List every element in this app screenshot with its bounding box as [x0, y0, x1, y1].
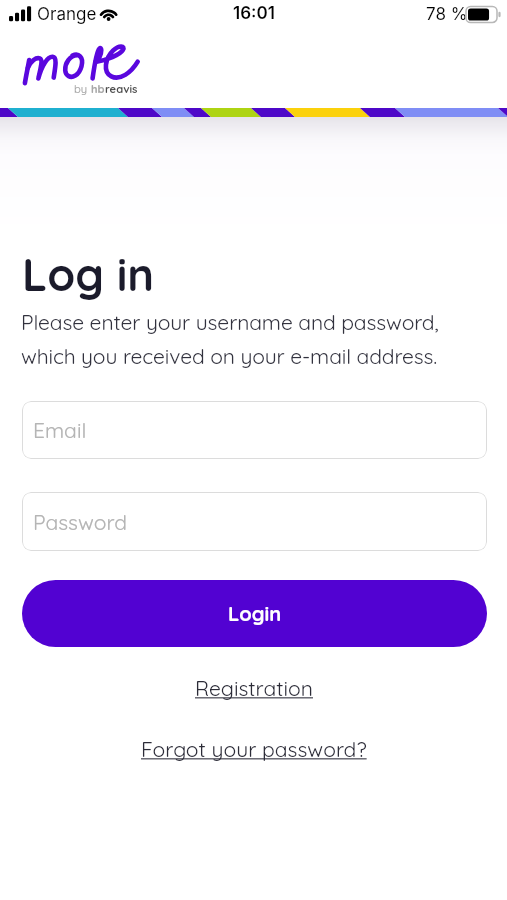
staticText: hb [91, 82, 105, 96]
staticText: Email [33, 417, 87, 443]
button[interactable]: Password [22, 492, 487, 551]
staticText: Please enter your username and password,… [21, 309, 439, 369]
staticText: Password [33, 509, 127, 535]
button[interactable]: Registration [189, 672, 319, 704]
staticText: Log in [22, 246, 155, 302]
button[interactable]: Login [22, 580, 487, 647]
staticText: Orange [37, 4, 97, 25]
button[interactable]: Email [22, 401, 487, 459]
staticText: by [74, 82, 91, 96]
staticText: Login [228, 601, 282, 626]
staticText: reavis [105, 82, 138, 96]
staticText: 16:01 [233, 3, 275, 24]
staticText: 78 % [426, 4, 468, 25]
button[interactable]: Forgot your password? [135, 733, 373, 765]
